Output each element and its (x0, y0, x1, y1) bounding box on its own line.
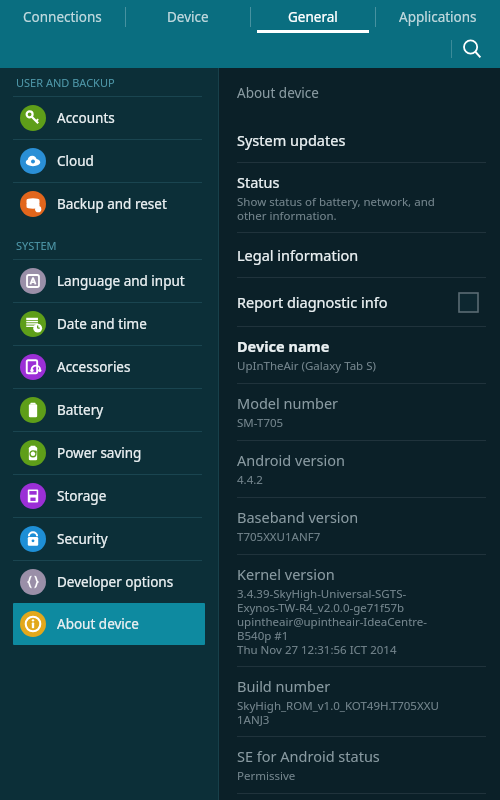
staticText: UpInTheAir (Galaxy Tab S) (237, 358, 376, 374)
staticText: Cloud (57, 152, 94, 170)
button[interactable]: Accounts (13, 97, 205, 139)
staticText: Backup and reset (57, 195, 167, 213)
button[interactable]: Cloud (13, 140, 205, 182)
staticText: Report diagnostic info (237, 292, 388, 312)
button[interactable]: System updates (219, 118, 500, 162)
staticText: About device (57, 615, 139, 633)
button[interactable]: Baseband version (219, 498, 500, 554)
staticText: Developer options (57, 573, 174, 591)
button[interactable]: Developer options (13, 561, 205, 603)
staticText: Accounts (57, 109, 115, 127)
staticText: Language and input (57, 272, 185, 290)
staticText: Connections (23, 8, 102, 26)
button[interactable]: Legal information (219, 233, 500, 277)
staticText: T705XXU1ANF7 (237, 529, 321, 545)
staticText: Battery (57, 401, 104, 419)
button[interactable]: Date and time (13, 303, 205, 345)
button[interactable]: Applications (376, 0, 500, 34)
button[interactable]: Device name (219, 327, 500, 383)
button[interactable]: Build number (219, 667, 500, 736)
button[interactable]: Report diagnostic info (219, 278, 500, 326)
button[interactable]: About device (13, 603, 205, 645)
staticText: Storage (57, 487, 107, 505)
staticText: Legal information (237, 245, 359, 265)
staticText: 4.4.2 (237, 472, 263, 488)
button[interactable]: Android version (219, 441, 500, 497)
staticText: Build number (237, 676, 331, 696)
staticText: Baseband version (237, 507, 359, 527)
button[interactable]: Device (126, 0, 250, 34)
staticText: Android version (237, 450, 345, 470)
button[interactable]: Backup and reset (13, 183, 205, 225)
staticText: Status (237, 172, 280, 192)
staticText: Applications (399, 8, 477, 26)
button[interactable]: Storage (13, 475, 205, 517)
button[interactable]: SE for Android status (219, 737, 500, 793)
button[interactable]: Status (219, 163, 500, 232)
staticText: Show status of battery, network, and oth… (237, 194, 435, 223)
staticText: Device name (237, 336, 330, 356)
staticText: 3.4.39-SkyHigh-Universal-SGTS- Exynos-TW… (237, 586, 428, 657)
staticText: Accessories (57, 358, 131, 376)
button[interactable]: Connections (0, 0, 125, 34)
staticText: Permissive (237, 768, 296, 784)
staticText: Power saving (57, 444, 142, 462)
staticText: System updates (237, 130, 346, 150)
button[interactable]: Security (13, 518, 205, 560)
staticText: Date and time (57, 315, 147, 333)
staticText: About device (237, 84, 319, 102)
button[interactable]: Battery (13, 389, 205, 431)
button[interactable]: Accessories (13, 346, 205, 388)
button[interactable]: Model number (219, 384, 500, 440)
button[interactable]: Language and input (13, 260, 205, 302)
staticText: Model number (237, 393, 339, 413)
staticText: SE for Android status (237, 746, 380, 766)
staticText: Security (57, 530, 108, 548)
staticText: Kernel version (237, 564, 335, 584)
staticText: USER AND BACKUP (16, 75, 115, 90)
staticText: SkyHigh_ROM_v1.0_KOT49H.T705XXU 1ANJ3 (237, 698, 439, 727)
button[interactable]: Power saving (13, 432, 205, 474)
staticText: SYSTEM (16, 238, 57, 253)
button[interactable]: Kernel version (219, 555, 500, 666)
button[interactable]: Search (454, 31, 490, 67)
button[interactable]: General (251, 0, 375, 34)
staticText: General (288, 8, 338, 26)
staticText: SM-T705 (237, 415, 284, 431)
staticText: Device (167, 8, 209, 26)
